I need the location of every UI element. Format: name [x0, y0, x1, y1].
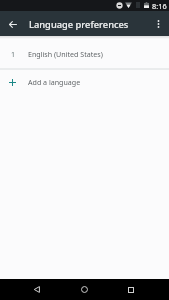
- button[interactable]: Recent apps: [113, 279, 149, 300]
- staticText: Add a language: [28, 77, 81, 87]
- staticText: 8:16: [152, 1, 167, 11]
- staticText: Language preferences: [29, 18, 129, 31]
- button[interactable]: Navigate up: [0, 11, 25, 36]
- button[interactable]: Back: [19, 279, 55, 300]
- staticText: English (United States): [28, 49, 103, 59]
- button[interactable]: 1: [0, 36, 169, 68]
- button[interactable]: Add a language: [0, 69, 169, 93]
- button[interactable]: Home: [66, 279, 102, 300]
- button[interactable]: More options: [148, 11, 169, 36]
- staticText: 1: [11, 49, 16, 59]
